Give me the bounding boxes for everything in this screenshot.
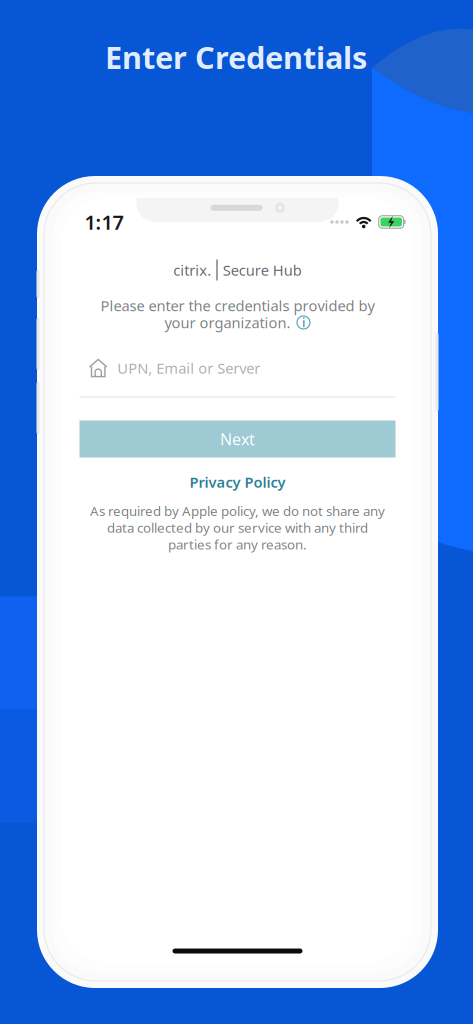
staticText: Privacy Policy xyxy=(189,472,285,492)
staticText: Please enter the credentials provided by xyxy=(100,296,374,315)
staticText: citrix. xyxy=(173,260,211,280)
staticText: 1:17 xyxy=(84,209,123,235)
staticText: parties for any reason. xyxy=(168,535,307,553)
staticText: Next xyxy=(220,428,255,450)
staticText: Secure Hub xyxy=(223,260,302,280)
button[interactable]: Privacy Policy xyxy=(157,469,317,495)
staticText: UPN, Email or Server xyxy=(117,358,260,378)
staticText: As required by Apple policy, we do not s… xyxy=(90,502,385,520)
staticText: i xyxy=(302,314,305,330)
staticText: data collected by our service with any t… xyxy=(107,519,368,536)
button[interactable]: Next xyxy=(79,420,395,457)
staticText: Enter Credentials xyxy=(105,37,367,77)
staticText: your organization. xyxy=(164,313,290,332)
